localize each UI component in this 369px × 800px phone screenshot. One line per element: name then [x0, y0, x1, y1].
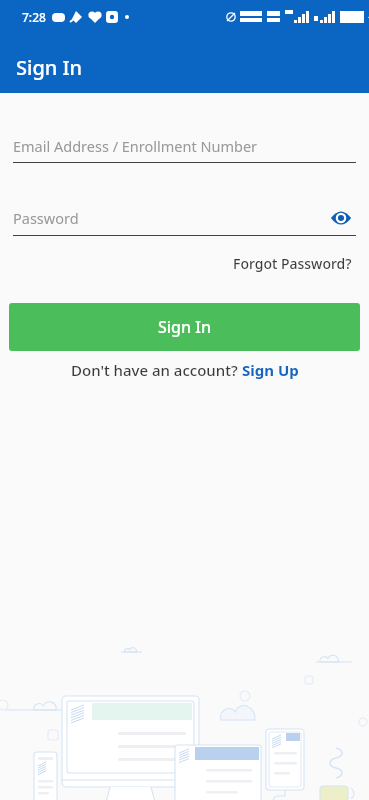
staticText: Sign In: [158, 316, 211, 338]
button[interactable]: Sign Up: [242, 360, 299, 380]
staticText: Email Address / Enrollment Number: [13, 136, 258, 156]
staticText: Forgot Password?: [233, 254, 352, 273]
button[interactable]: Forgot Password?: [229, 250, 356, 277]
staticText: 7:28: [22, 9, 46, 25]
button[interactable]: Show password: [326, 203, 356, 233]
staticText: Password: [13, 208, 326, 228]
button[interactable]: Sign In: [9, 303, 360, 351]
staticText: Don't have an account?: [71, 360, 242, 380]
staticText: Sign Up: [242, 360, 299, 380]
staticText: Sign In: [16, 54, 83, 81]
